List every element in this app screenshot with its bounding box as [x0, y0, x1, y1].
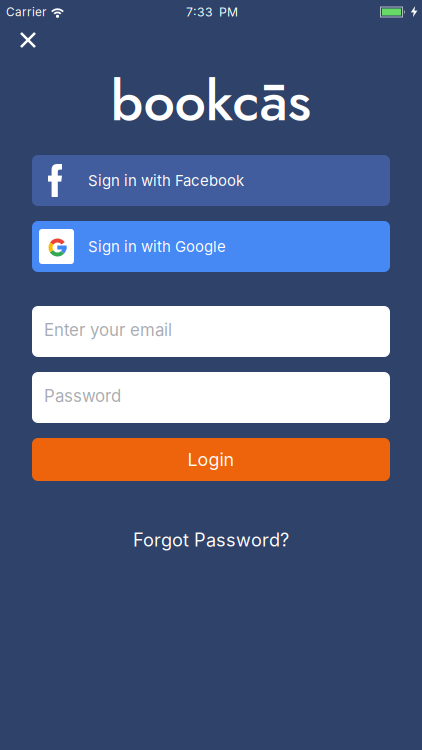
staticText: Carrier [6, 5, 46, 19]
staticText: Login [187, 449, 234, 470]
staticText: Forgot Password? [133, 529, 289, 551]
button[interactable]: Sign in with Facebook [32, 155, 390, 206]
staticText: Password [44, 386, 121, 406]
button[interactable]: Sign in with Google [32, 221, 390, 272]
staticText: Sign in with Facebook [88, 171, 244, 190]
button[interactable]: Login [32, 438, 390, 481]
staticText: Sign in with Google [88, 237, 226, 256]
button[interactable]: Forgot Password? [125, 521, 297, 559]
staticText: Enter your email [44, 320, 172, 340]
button[interactable]: Close [12, 24, 44, 56]
staticText: 7:33 PM [186, 5, 238, 19]
staticText: bookcās [110, 61, 311, 141]
